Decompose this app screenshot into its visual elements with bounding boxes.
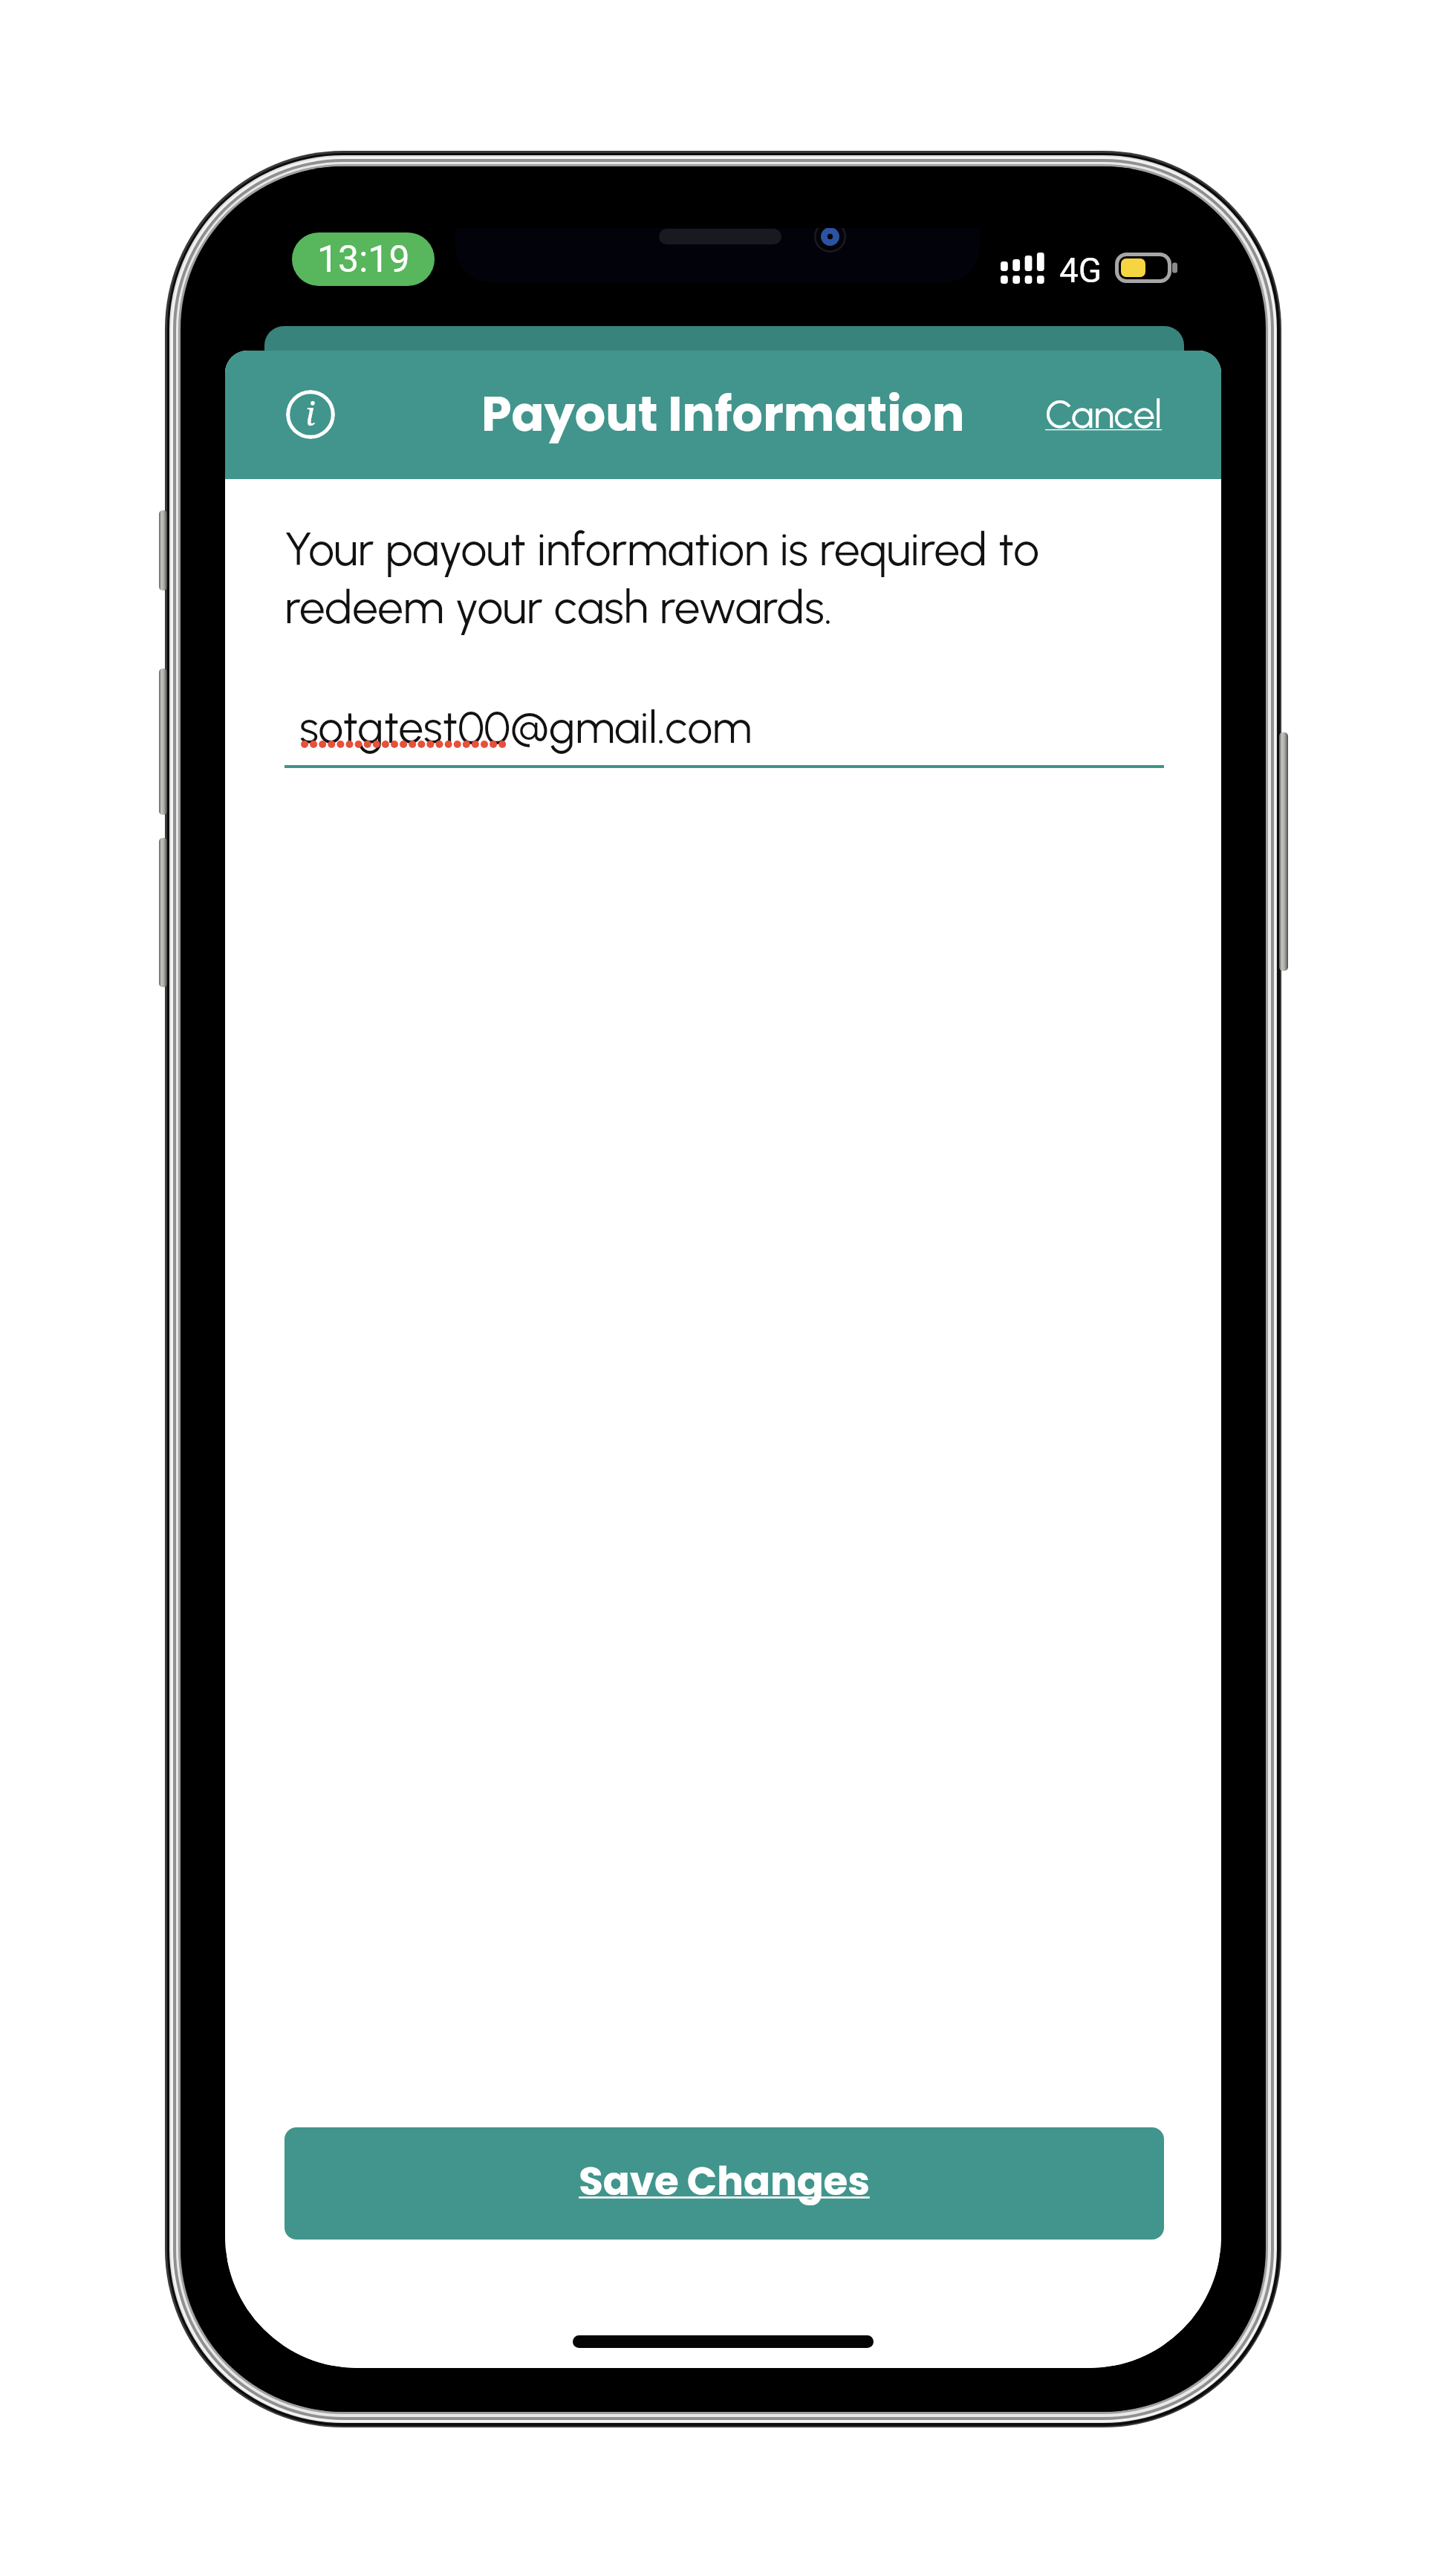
staticText: Your payout information is required to r… <box>285 521 1057 634</box>
staticText: i <box>305 391 316 435</box>
staticText: Cancel <box>1045 391 1163 438</box>
staticText: 4G <box>1059 250 1102 290</box>
staticText: Payout Information <box>481 380 965 448</box>
staticText: sotgtest00@gmail.com <box>299 700 752 754</box>
button[interactable]: Cancel <box>1045 391 1163 438</box>
staticText: 13:19 <box>317 238 410 282</box>
button[interactable]: Save Changes <box>285 2127 1164 2240</box>
button[interactable]: Information <box>286 390 335 439</box>
staticText: Save Changes <box>579 2153 870 2208</box>
